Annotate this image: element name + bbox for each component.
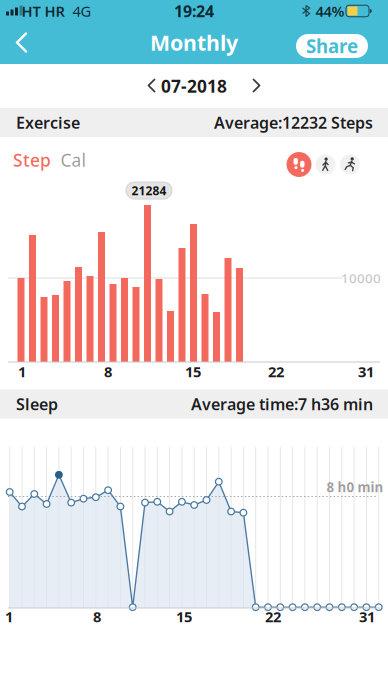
staticText: 21284 xyxy=(131,182,166,198)
staticText: 15 xyxy=(176,607,192,626)
button[interactable] xyxy=(315,154,335,174)
button[interactable]: Step xyxy=(5,143,59,177)
staticText: Share xyxy=(306,34,358,58)
staticText: Step xyxy=(13,148,51,171)
staticText: 44% xyxy=(315,1,344,21)
staticText: 8 xyxy=(93,607,101,626)
staticText: 31 xyxy=(359,607,375,626)
staticText: 19:24 xyxy=(174,0,214,22)
staticText: 8 xyxy=(104,362,112,381)
staticText: 4G xyxy=(72,1,91,21)
staticText: 07-2018 xyxy=(161,74,227,97)
staticText: 1 xyxy=(5,607,13,626)
staticText: Cal xyxy=(60,148,85,171)
staticText: Average:12232 Steps xyxy=(214,112,373,133)
button[interactable] xyxy=(340,154,360,174)
staticText: Exercise xyxy=(16,112,80,133)
staticText: HT HR xyxy=(21,1,64,21)
staticText: 22 xyxy=(268,362,284,381)
staticText: 10000 xyxy=(341,269,381,287)
button[interactable] xyxy=(0,21,44,64)
button[interactable]: Share xyxy=(296,34,368,58)
staticText: 31 xyxy=(358,362,374,381)
staticText: 22 xyxy=(265,607,281,626)
staticText: 1 xyxy=(18,362,26,381)
staticText: 8 h0 min xyxy=(326,478,383,496)
button[interactable]: Cal xyxy=(51,143,95,177)
button[interactable] xyxy=(236,64,278,107)
button[interactable] xyxy=(286,152,311,177)
staticText: Average time:7 h36 min xyxy=(191,393,373,415)
button[interactable] xyxy=(130,64,172,107)
staticText: Monthly xyxy=(150,28,238,57)
staticText: 15 xyxy=(185,362,201,381)
staticText: Sleep xyxy=(16,393,58,415)
